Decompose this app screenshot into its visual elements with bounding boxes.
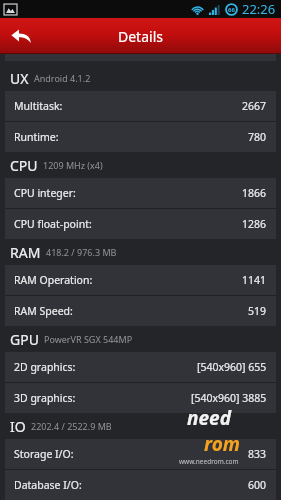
button[interactable]: RAM Speed: [5,296,276,326]
button[interactable]: CPU float-point: [5,209,276,239]
staticText: 519 [248,304,267,318]
staticText: 600 [248,478,267,492]
button[interactable]: 3D graphics: [5,383,276,413]
staticText: 1141 [242,273,267,287]
staticText: 1209 MHz (x4) [43,159,103,171]
staticText: GPU [10,330,39,349]
button[interactable]: RAM Operation: [5,265,276,295]
staticText: [540x960] 3885 [191,391,267,405]
staticText: 2202.4 / 2522.9 MB [31,420,112,432]
staticText: CPU integer: [14,186,76,200]
staticText: 1286 [242,217,267,231]
staticText: 780 [248,130,267,144]
staticText: Multitask: [14,99,63,113]
staticText: [540x960] 655 [197,360,267,374]
staticText: 833 [248,447,267,461]
staticText: Runtime: [14,130,59,144]
staticText: Database I/O: [14,478,82,492]
staticText: 418.2 / 976.3 MB [46,246,117,258]
button[interactable]: Back [0,18,42,54]
staticText: 3D graphics: [14,391,76,405]
button[interactable]: Storage I/O: [5,439,276,469]
button[interactable]: Runtime: [5,122,276,152]
staticText: RAM Operation: [14,273,93,287]
staticText: Storage I/O: [14,447,74,461]
staticText: 2667 [242,99,267,113]
button[interactable]: CPU integer: [5,178,276,208]
staticText: RAM [10,243,41,262]
staticText: 2D graphics: [14,360,76,374]
staticText: RAM Speed: [14,304,73,318]
button[interactable]: 2D graphics: [5,352,276,382]
staticText: UX [10,69,29,88]
staticText: CPU float-point: [14,217,92,231]
staticText: 1866 [242,186,267,200]
button[interactable]: Database I/O: [5,470,276,500]
staticText: www.needrom.com [179,457,239,466]
staticText: IO [10,417,26,436]
staticText: Android 4.1.2 [34,72,91,84]
staticText: Details [118,27,163,46]
staticText: rom [204,431,240,457]
staticText: CPU [10,156,38,175]
staticText: 66 [228,6,235,14]
button[interactable]: Multitask: [5,91,276,121]
staticText: need [187,405,231,431]
staticText: 22:26 [242,0,276,18]
staticText: PowerVR SGX 544MP [44,333,133,345]
